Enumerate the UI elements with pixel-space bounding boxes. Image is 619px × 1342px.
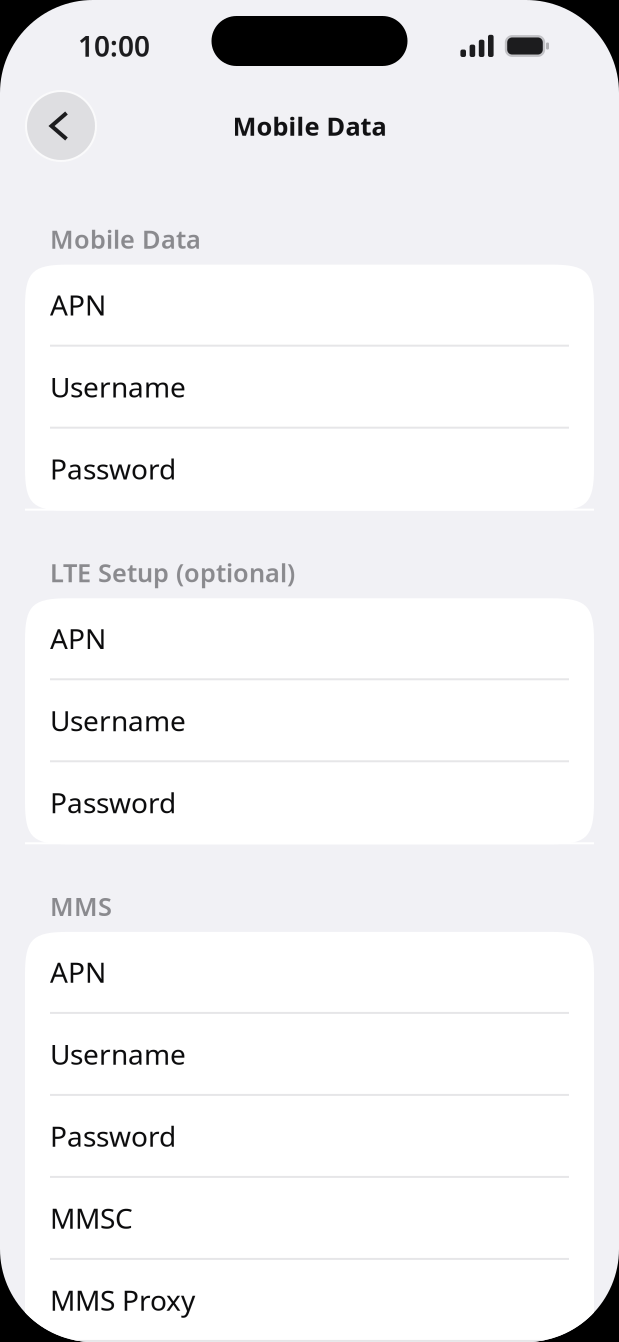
button[interactable]: MMSC: [25, 1178, 594, 1260]
button[interactable]: Username: [25, 680, 594, 762]
staticText: APN: [50, 286, 106, 323]
button[interactable]: Password: [25, 429, 594, 511]
staticText: Password: [50, 784, 176, 821]
button[interactable]: APN: [25, 265, 594, 347]
staticText: MMSC: [50, 1199, 133, 1236]
staticText: MMS: [50, 889, 112, 923]
staticText: APN: [50, 953, 106, 990]
button[interactable]: Back: [25, 90, 97, 162]
staticText: Password: [50, 450, 176, 487]
button[interactable]: Username: [25, 1014, 594, 1096]
staticText: Mobile Data: [50, 222, 201, 256]
button[interactable]: Password: [25, 762, 594, 844]
staticText: Username: [50, 1035, 186, 1072]
staticText: MMS Proxy: [50, 1281, 195, 1318]
button[interactable]: Password: [25, 1096, 594, 1178]
staticText: Username: [50, 702, 186, 739]
staticText: LTE Setup (optional): [50, 556, 295, 589]
staticText: 10:00: [78, 27, 150, 65]
button[interactable]: APN: [25, 932, 594, 1014]
button[interactable]: Username: [25, 347, 594, 429]
staticText: Username: [50, 368, 186, 405]
staticText: Mobile Data: [232, 109, 386, 143]
staticText: APN: [50, 620, 106, 657]
button[interactable]: MMS Proxy: [25, 1260, 594, 1342]
staticText: Password: [50, 1117, 176, 1154]
button[interactable]: APN: [25, 598, 594, 680]
